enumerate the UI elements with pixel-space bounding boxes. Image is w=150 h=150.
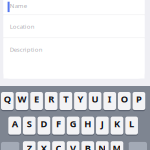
staticText: E: [34, 93, 39, 105]
button[interactable]: Location: [3, 15, 144, 37]
button[interactable]: Delete: [129, 141, 147, 150]
button[interactable]: Y: [74, 92, 87, 111]
staticText: R: [48, 93, 54, 105]
button[interactable]: P: [133, 92, 145, 111]
staticText: G: [70, 117, 77, 130]
staticText: Q: [4, 93, 11, 105]
button[interactable]: E: [30, 92, 43, 111]
staticText: V: [70, 142, 76, 150]
staticText: X: [41, 142, 47, 150]
staticText: D: [40, 117, 47, 130]
button[interactable]: N: [96, 141, 109, 150]
staticText: J: [101, 117, 104, 130]
button[interactable]: A: [8, 117, 21, 136]
staticText: S: [27, 117, 32, 130]
button[interactable]: K: [111, 117, 123, 136]
button[interactable]: Q: [1, 92, 14, 111]
staticText: P: [136, 93, 142, 105]
button[interactable]: T: [59, 92, 72, 111]
button[interactable]: G: [67, 117, 79, 136]
button[interactable]: Description: [3, 38, 144, 78]
button[interactable]: I: [103, 92, 116, 111]
button[interactable]: X: [37, 141, 50, 150]
staticText: A: [12, 117, 18, 130]
button[interactable]: H: [81, 117, 94, 136]
staticText: Y: [77, 93, 83, 105]
staticText: H: [84, 117, 91, 130]
staticText: B: [85, 142, 91, 150]
staticText: W: [17, 93, 26, 105]
button[interactable]: W: [16, 92, 28, 111]
button[interactable]: F: [52, 117, 65, 136]
staticText: K: [114, 117, 120, 130]
button[interactable]: L: [125, 117, 138, 136]
staticText: F: [56, 117, 61, 130]
button[interactable]: O: [118, 92, 131, 111]
button[interactable]: D: [37, 117, 50, 136]
staticText: O: [121, 93, 128, 105]
button[interactable]: C: [52, 141, 65, 150]
button[interactable]: J: [96, 117, 109, 136]
button[interactable]: B: [81, 141, 94, 150]
button[interactable]: U: [89, 92, 101, 111]
staticText: L: [129, 117, 134, 130]
button[interactable]: Z: [23, 141, 36, 150]
staticText: Location: [10, 22, 35, 31]
staticText: N: [98, 142, 106, 150]
button[interactable]: S: [23, 117, 36, 136]
staticText: I: [108, 93, 112, 105]
staticText: Description: [10, 45, 43, 54]
staticText: M: [112, 142, 121, 150]
button[interactable]: R: [45, 92, 58, 111]
staticText: U: [92, 93, 99, 105]
button[interactable]: Shift: [1, 141, 19, 150]
staticText: C: [55, 142, 61, 150]
staticText: Name: [10, 2, 27, 10]
button[interactable]: M: [111, 141, 123, 150]
button[interactable]: V: [67, 141, 79, 150]
button[interactable]: Name: [3, 0, 144, 14]
staticText: T: [63, 93, 68, 105]
staticText: Z: [27, 142, 32, 150]
